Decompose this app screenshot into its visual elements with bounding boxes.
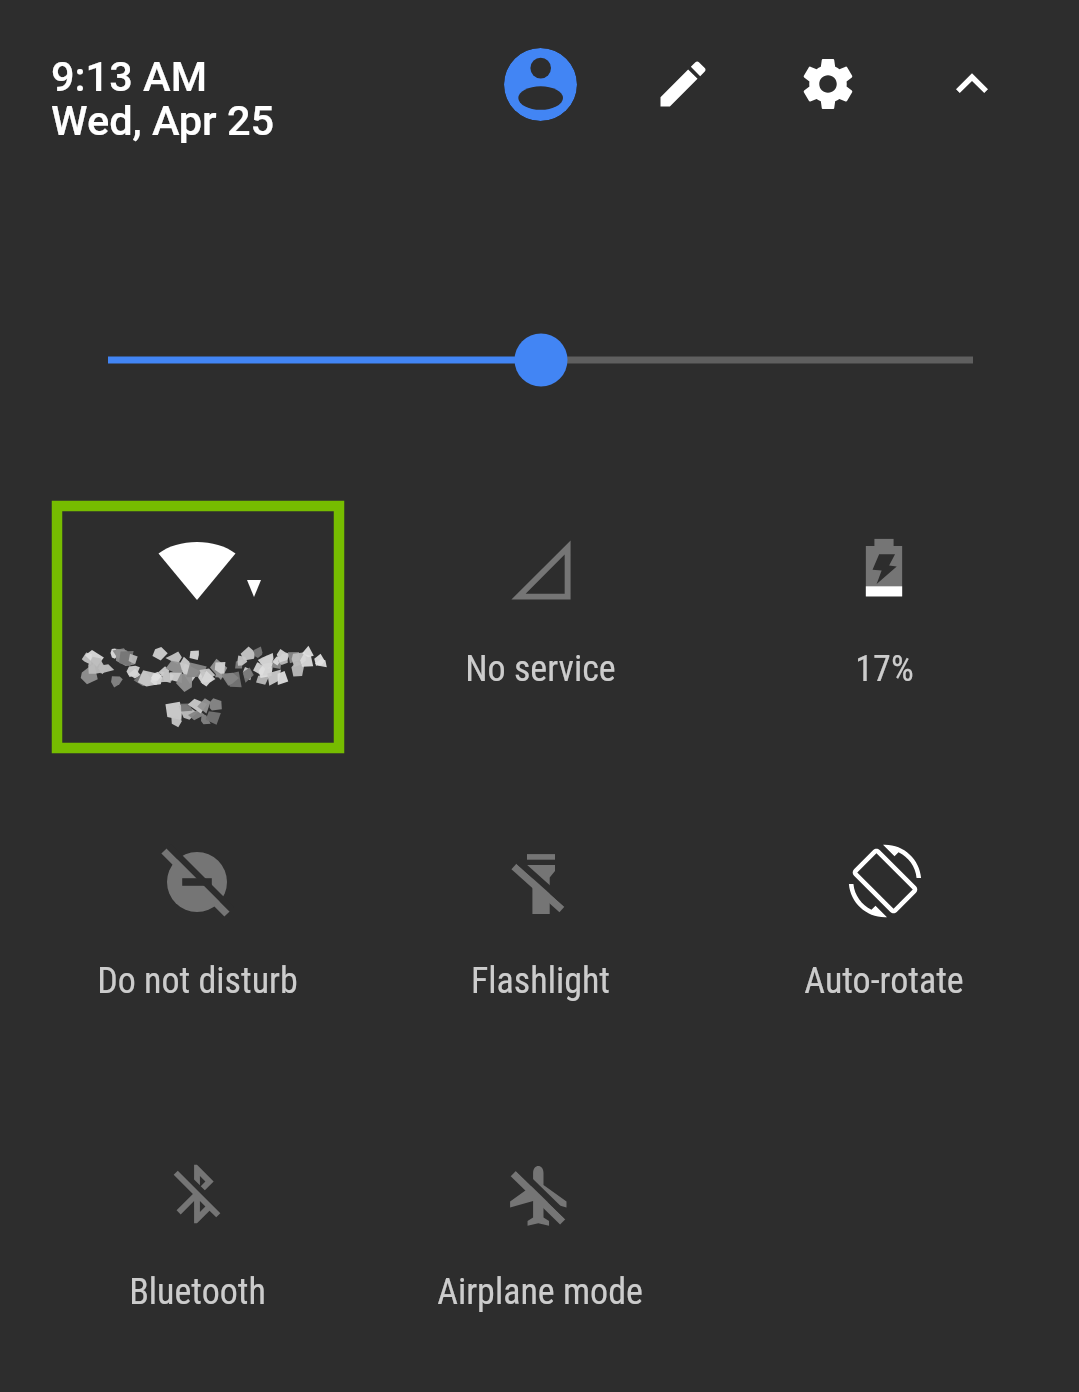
button[interactable]: Date and time [51,52,311,152]
staticText: Airplane mode [437,1271,643,1313]
button[interactable]: User account [504,48,577,121]
staticText: 17% [855,648,914,690]
staticText: Do not disturb [97,960,298,1002]
staticText: Bluetooth [129,1271,266,1313]
button[interactable]: Auto-rotate [773,769,997,993]
button[interactable]: Bluetooth [85,1082,309,1306]
button[interactable]: Flashlight [428,770,652,994]
button[interactable]: Collapse [937,49,1007,119]
staticText: No service [465,648,616,690]
staticText: Flashlight [471,960,610,1002]
button[interactable]: Battery [772,456,996,680]
staticText: Wed, Apr 25 [51,96,275,145]
button[interactable]: Airplane mode [428,1082,652,1306]
staticText: 9:13 AM [51,52,208,101]
button[interactable]: Settings [793,49,863,119]
staticText: Auto-rotate [804,960,964,1002]
button[interactable]: Edit [648,49,718,119]
button[interactable]: Mobile data [429,458,653,682]
button[interactable]: Wi-Fi [85,456,309,680]
button[interactable]: Brightness [60,318,1020,402]
button[interactable]: Do not disturb [85,770,309,994]
